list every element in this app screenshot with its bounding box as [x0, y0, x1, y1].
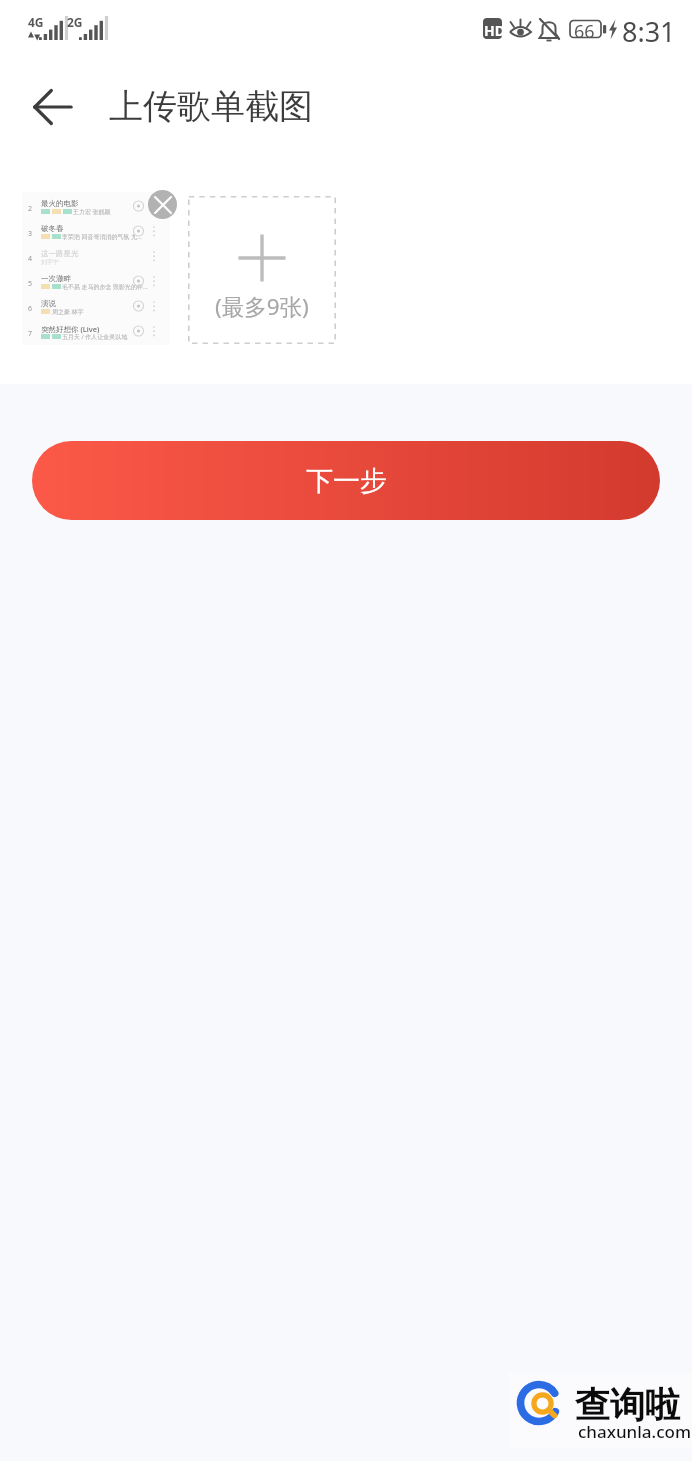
staticText: 查询啦 — [575, 1383, 680, 1427]
staticText: 2 — [28, 204, 33, 214]
staticText: (最多9张) — [215, 291, 309, 322]
staticText: 突然好想你 (Live) — [41, 324, 100, 334]
staticText: HD — [484, 21, 505, 40]
button[interactable]: 下一步 — [32, 441, 660, 520]
staticText: 五月天 / 作人让金灵以地 — [62, 333, 128, 341]
staticText: 周之豪 林宇 — [52, 308, 84, 316]
staticText: 最火的电影 — [41, 199, 79, 208]
staticText: 这一路星光 — [41, 249, 79, 258]
staticText: 演说 — [41, 299, 56, 308]
staticText: 5 — [28, 279, 33, 289]
button[interactable]: Add photo — [188, 196, 336, 344]
staticText: 毛不易 走马的步念 毁影光的样... — [62, 283, 148, 291]
staticText: 王力宏 张靓颖 — [73, 208, 111, 216]
staticText: 李荣浩 回音哥消消的气氛 九... — [62, 233, 142, 241]
staticText: 刘宇宁 — [41, 258, 59, 266]
button[interactable]: Remove image — [148, 190, 177, 219]
staticText: 4G — [28, 14, 44, 30]
button[interactable]: 2 — [22, 192, 170, 345]
staticText: chaxunla.com — [578, 1420, 692, 1443]
staticText: 66 — [574, 19, 595, 44]
staticText: 6 — [28, 304, 33, 314]
staticText: 上传歌单截图 — [109, 85, 313, 128]
staticText: 一次澈畔 — [41, 274, 71, 283]
staticText: 4 — [28, 254, 33, 264]
staticText: 破冬春 — [41, 224, 64, 233]
staticText: 下一步 — [306, 464, 387, 498]
staticText: 2G — [67, 14, 83, 30]
staticText: 3 — [28, 229, 33, 239]
button[interactable]: Back — [27, 81, 79, 133]
staticText: 7 — [28, 329, 33, 339]
staticText: 8:31 — [622, 13, 676, 50]
